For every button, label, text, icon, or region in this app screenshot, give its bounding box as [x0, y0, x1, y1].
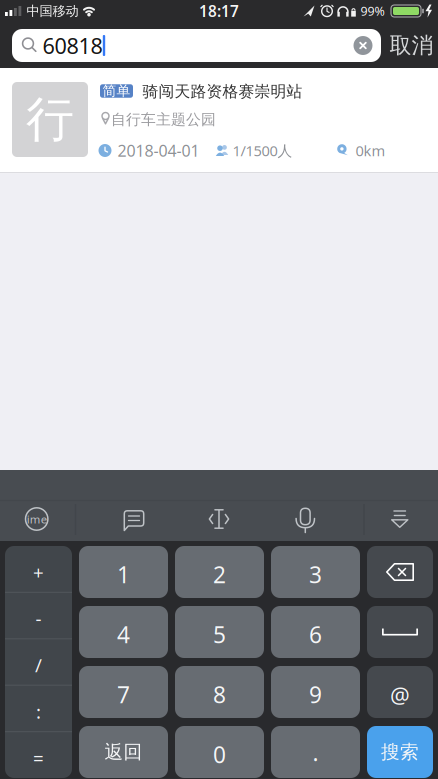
button[interactable]: 8 [175, 666, 264, 718]
button[interactable]: . [271, 726, 360, 778]
button[interactable]: = [5, 732, 72, 778]
staticText: @ [390, 680, 410, 710]
staticText: 1 [117, 559, 130, 589]
staticText: 行 [26, 90, 74, 149]
button[interactable]: 1 [79, 546, 168, 598]
staticText: 18:17 [199, 1, 239, 21]
button[interactable]: 2 [175, 546, 264, 598]
staticText: 99% [360, 3, 384, 19]
staticText: 骑闯天路资格赛崇明站 [142, 82, 302, 101]
staticText: ime [27, 511, 47, 526]
staticText: 5 [213, 619, 226, 649]
button[interactable]: / [5, 639, 72, 685]
staticText: 2018-04-01 [118, 140, 200, 161]
button[interactable]: Voice input [295, 507, 315, 533]
staticText: 1/1500人 [233, 141, 293, 160]
button[interactable]: 返回 [79, 726, 168, 778]
staticText: 7 [117, 679, 130, 709]
staticText: = [33, 745, 44, 770]
button[interactable]: 7 [79, 666, 168, 718]
button[interactable]: Cursor [209, 509, 229, 529]
button[interactable]: : [5, 685, 72, 731]
staticText: 60818 [42, 31, 102, 60]
staticText: 简单 [102, 83, 130, 99]
button[interactable]: 9 [271, 666, 360, 718]
staticText: - [35, 606, 41, 631]
staticText: 自行车主题公园 [111, 110, 216, 129]
button[interactable]: 4 [79, 606, 168, 658]
button[interactable]: 0 [175, 726, 264, 778]
staticText: + [33, 560, 44, 585]
button[interactable]: Delete [367, 546, 433, 598]
staticText: 取消 [389, 32, 433, 59]
button[interactable]: @ [367, 666, 433, 718]
staticText: 6 [309, 619, 322, 649]
button[interactable]: Input method [25, 507, 49, 531]
staticText: / [35, 653, 42, 677]
staticText: 3 [309, 559, 322, 589]
button[interactable]: - [5, 593, 72, 639]
button[interactable]: 60818 [12, 29, 381, 62]
button[interactable]: 搜索 [367, 726, 433, 778]
staticText: 0 [213, 739, 226, 769]
staticText: 中国移动 [26, 3, 78, 19]
staticText: 搜索 [381, 740, 419, 763]
button[interactable]: 3 [271, 546, 360, 598]
button[interactable]: 6 [271, 606, 360, 658]
button[interactable]: 5 [175, 606, 264, 658]
button[interactable]: 取消 [389, 32, 433, 59]
staticText: : [36, 699, 41, 724]
staticText: 4 [117, 619, 130, 649]
button[interactable]: Clear text [353, 36, 372, 55]
button[interactable]: 行 [0, 68, 438, 172]
button[interactable]: Hide keyboard [391, 509, 409, 528]
staticText: 0km [356, 141, 386, 160]
staticText: 返回 [104, 740, 142, 763]
staticText: . [312, 737, 318, 767]
button[interactable]: Space [367, 606, 433, 658]
staticText: 8 [213, 679, 226, 709]
staticText: 9 [309, 679, 322, 709]
button[interactable]: Phrases [123, 510, 144, 531]
button[interactable]: + [5, 546, 72, 592]
staticText: 2 [213, 559, 226, 589]
